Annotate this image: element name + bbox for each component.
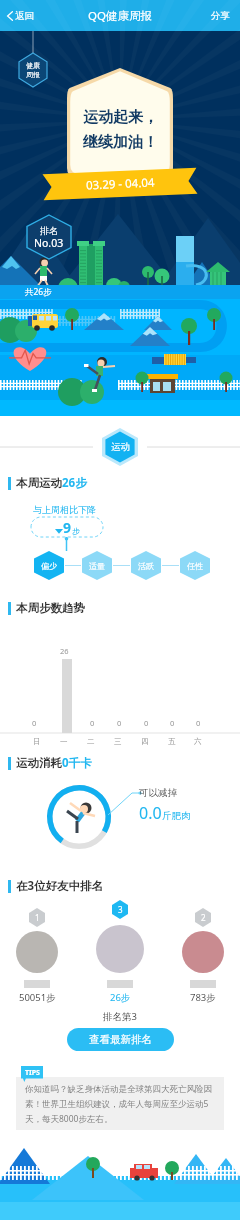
staticText: TIPS [25, 1068, 40, 1078]
staticText: 03.29 - 04.04 [86, 174, 155, 193]
staticText: 0 [144, 718, 149, 728]
button[interactable]: 任性 [180, 551, 210, 580]
staticText: No.03 [34, 236, 64, 250]
button[interactable]: 偏少 [34, 551, 64, 580]
staticText: 适量 [89, 561, 105, 571]
staticText: 共26步 [25, 286, 52, 298]
button[interactable]: 1 [14, 908, 60, 1004]
staticText: 26步 [110, 991, 131, 1004]
staticText: 斤肥肉 [162, 810, 191, 822]
staticText: 五 [168, 737, 176, 746]
staticText: 运动起来， [83, 108, 158, 127]
staticText: 0千卡 [62, 755, 92, 771]
button[interactable]: 分享 [201, 4, 240, 28]
staticText: 日 [33, 737, 41, 746]
button[interactable]: 2 [180, 908, 226, 1004]
staticText: 0 [90, 718, 95, 728]
staticText: 排名 [40, 225, 58, 236]
staticText: 偏少 [41, 561, 57, 571]
staticText: 六 [194, 737, 202, 746]
staticText: 0 [170, 718, 175, 728]
staticText: 50051步 [19, 991, 56, 1004]
staticText: 0 [117, 718, 122, 728]
button[interactable]: 适量 [82, 551, 112, 580]
staticText: 0 [32, 718, 37, 728]
staticText: 1 [35, 912, 40, 923]
staticText: 783步 [190, 991, 216, 1004]
staticText: 查看最新排名 [89, 1033, 152, 1046]
button[interactable]: 查看最新排名 [67, 1028, 174, 1051]
staticText: 活跃 [138, 561, 154, 571]
staticText: 可以减掉 [139, 787, 177, 799]
staticText: 26步 [62, 475, 87, 491]
staticText: 与上周相比下降 [33, 504, 96, 515]
staticText: 继续加油！ [83, 133, 158, 152]
staticText: 任性 [187, 561, 203, 571]
staticText: 3 [118, 904, 123, 915]
staticText: 四 [141, 737, 149, 746]
button[interactable]: 活跃 [131, 551, 161, 580]
staticText: 排名第3 [103, 1010, 137, 1023]
staticText: 运动 [111, 441, 130, 453]
staticText: 0 [196, 718, 201, 728]
staticText: 三 [114, 737, 122, 746]
staticText: 本周运动 [16, 476, 62, 490]
staticText: 你知道吗？缺乏身体活动是全球第四大死亡风险因素！世界卫生组织建议，成年人每周应至… [25, 1084, 215, 1125]
button[interactable]: 返回 [0, 4, 40, 28]
staticText: QQ健康周报 [88, 8, 152, 24]
staticText: 26 [60, 646, 69, 656]
staticText: 2 [201, 912, 206, 923]
staticText: 分享 [211, 10, 230, 22]
staticText: 二 [87, 737, 95, 746]
staticText: 一 [60, 737, 68, 746]
staticText: 0.0 [139, 802, 162, 824]
staticText: 运动消耗 [16, 756, 62, 770]
staticText: 在3位好友中排名 [16, 878, 104, 894]
staticText: 健康 周报 [26, 61, 40, 79]
staticText: 返回 [15, 10, 34, 22]
button[interactable]: 3 [94, 900, 146, 1004]
staticText: 本周步数趋势 [16, 601, 85, 615]
staticText: 9 [63, 518, 72, 537]
staticText: 步 [72, 526, 80, 536]
